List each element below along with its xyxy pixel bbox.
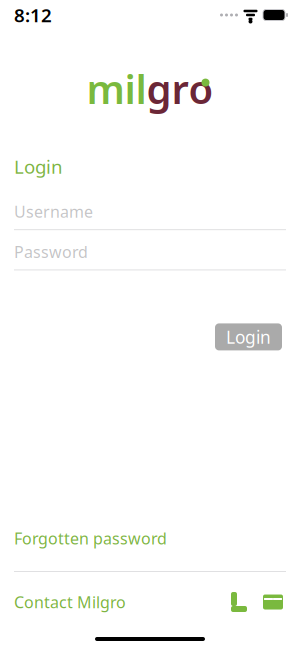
staticText: o <box>188 62 213 115</box>
button[interactable]: Email Milgro <box>256 587 290 617</box>
staticText: g <box>146 62 171 115</box>
staticText: Login <box>226 325 271 348</box>
staticText: Login <box>14 154 63 179</box>
staticText: Password <box>14 241 88 262</box>
staticText: Username <box>14 201 93 222</box>
staticText: 8:12 <box>14 3 52 27</box>
staticText: Contact Milgro <box>14 591 126 613</box>
button[interactable]: Login <box>215 323 282 350</box>
button[interactable]: Call Milgro <box>222 587 256 617</box>
staticText: r <box>171 62 188 115</box>
staticText: Forgotten password <box>14 528 167 549</box>
staticText: mil <box>86 62 146 115</box>
button[interactable]: Forgotten password <box>14 522 167 555</box>
